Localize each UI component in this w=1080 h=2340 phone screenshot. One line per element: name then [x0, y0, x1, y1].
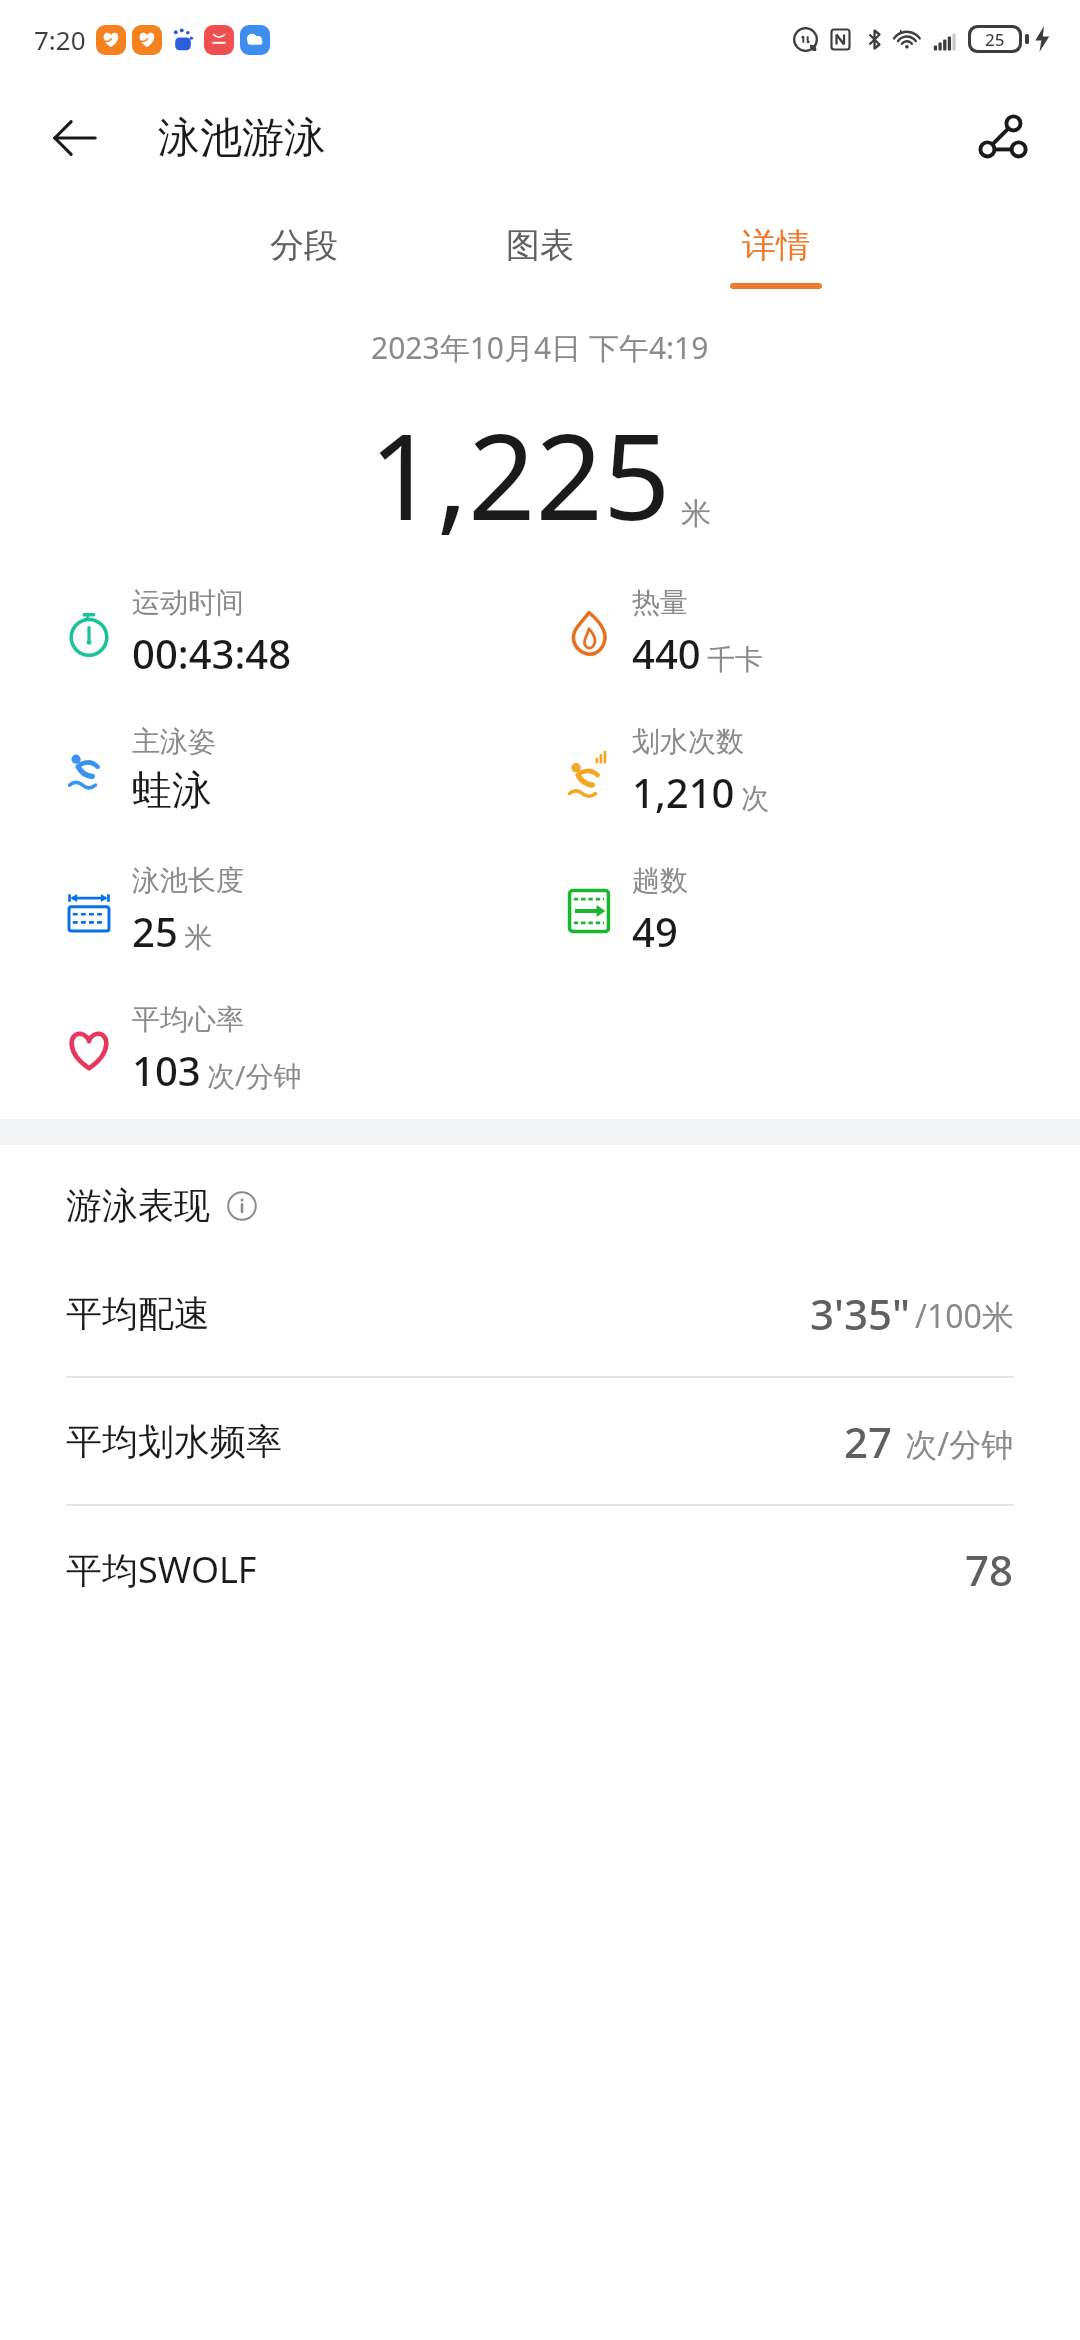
staticText: 米	[184, 920, 212, 955]
staticText: 分段	[270, 224, 338, 267]
staticText: 440	[632, 626, 701, 680]
staticText: 平均心率	[132, 1002, 244, 1037]
staticText: 图表	[506, 224, 574, 267]
staticText: 49	[632, 904, 678, 958]
button[interactable]: Back	[40, 103, 110, 173]
staticText: 次/分钟	[897, 1422, 1014, 1466]
staticText: 划水次数	[632, 724, 744, 759]
button[interactable]: 详情	[722, 224, 830, 289]
button[interactable]: 运动时间	[62, 585, 292, 680]
button[interactable]: 平均划水频率	[0, 1378, 1080, 1504]
button[interactable]: 图表	[486, 224, 594, 289]
staticText: 游泳表现	[66, 1183, 210, 1228]
staticText: 27	[844, 1413, 893, 1470]
button[interactable]: 趟数	[562, 863, 688, 958]
button[interactable]: Info	[224, 1188, 260, 1224]
staticText: 1,225	[369, 394, 671, 555]
button[interactable]: 分段	[250, 224, 358, 289]
staticText: 平均配速	[66, 1291, 210, 1336]
staticText: 运动时间	[132, 585, 244, 620]
staticText: 3'35"	[810, 1285, 911, 1342]
button[interactable]: 平均配速	[0, 1250, 1080, 1376]
button[interactable]: Share	[964, 100, 1040, 176]
staticText: 泳池游泳	[158, 112, 326, 165]
staticText: 蛙泳	[132, 765, 212, 815]
staticText: 103	[132, 1043, 201, 1097]
staticText: 78	[965, 1541, 1014, 1598]
button[interactable]: 泳池长度	[62, 863, 244, 958]
staticText: 泳池长度	[132, 863, 244, 898]
staticText: 00:43:48	[132, 626, 292, 680]
button[interactable]: 热量	[562, 585, 763, 680]
staticText: 7:20	[34, 22, 86, 57]
staticText: 详情	[742, 224, 810, 267]
staticText: /100米	[915, 1294, 1014, 1338]
staticText: 次/分钟	[207, 1056, 302, 1094]
staticText: 次	[741, 781, 769, 816]
button[interactable]: 划水次数	[562, 724, 769, 819]
staticText: 2023年10月4日 下午4:19	[371, 327, 709, 368]
staticText: 平均SWOLF	[66, 1545, 257, 1594]
staticText: 25	[132, 904, 178, 958]
button[interactable]: 平均SWOLF	[0, 1506, 1080, 1632]
staticText: 主泳姿	[132, 724, 216, 759]
staticText: 千卡	[707, 642, 763, 677]
staticText: 米	[681, 495, 711, 533]
button[interactable]: 平均心率	[62, 1002, 302, 1097]
staticText: 1,210	[632, 765, 735, 819]
button[interactable]: 主泳姿	[62, 724, 216, 815]
staticText: 热量	[632, 585, 688, 620]
staticText: 25	[985, 28, 1005, 50]
staticText: 趟数	[632, 863, 688, 898]
staticText: 平均划水频率	[66, 1419, 282, 1464]
